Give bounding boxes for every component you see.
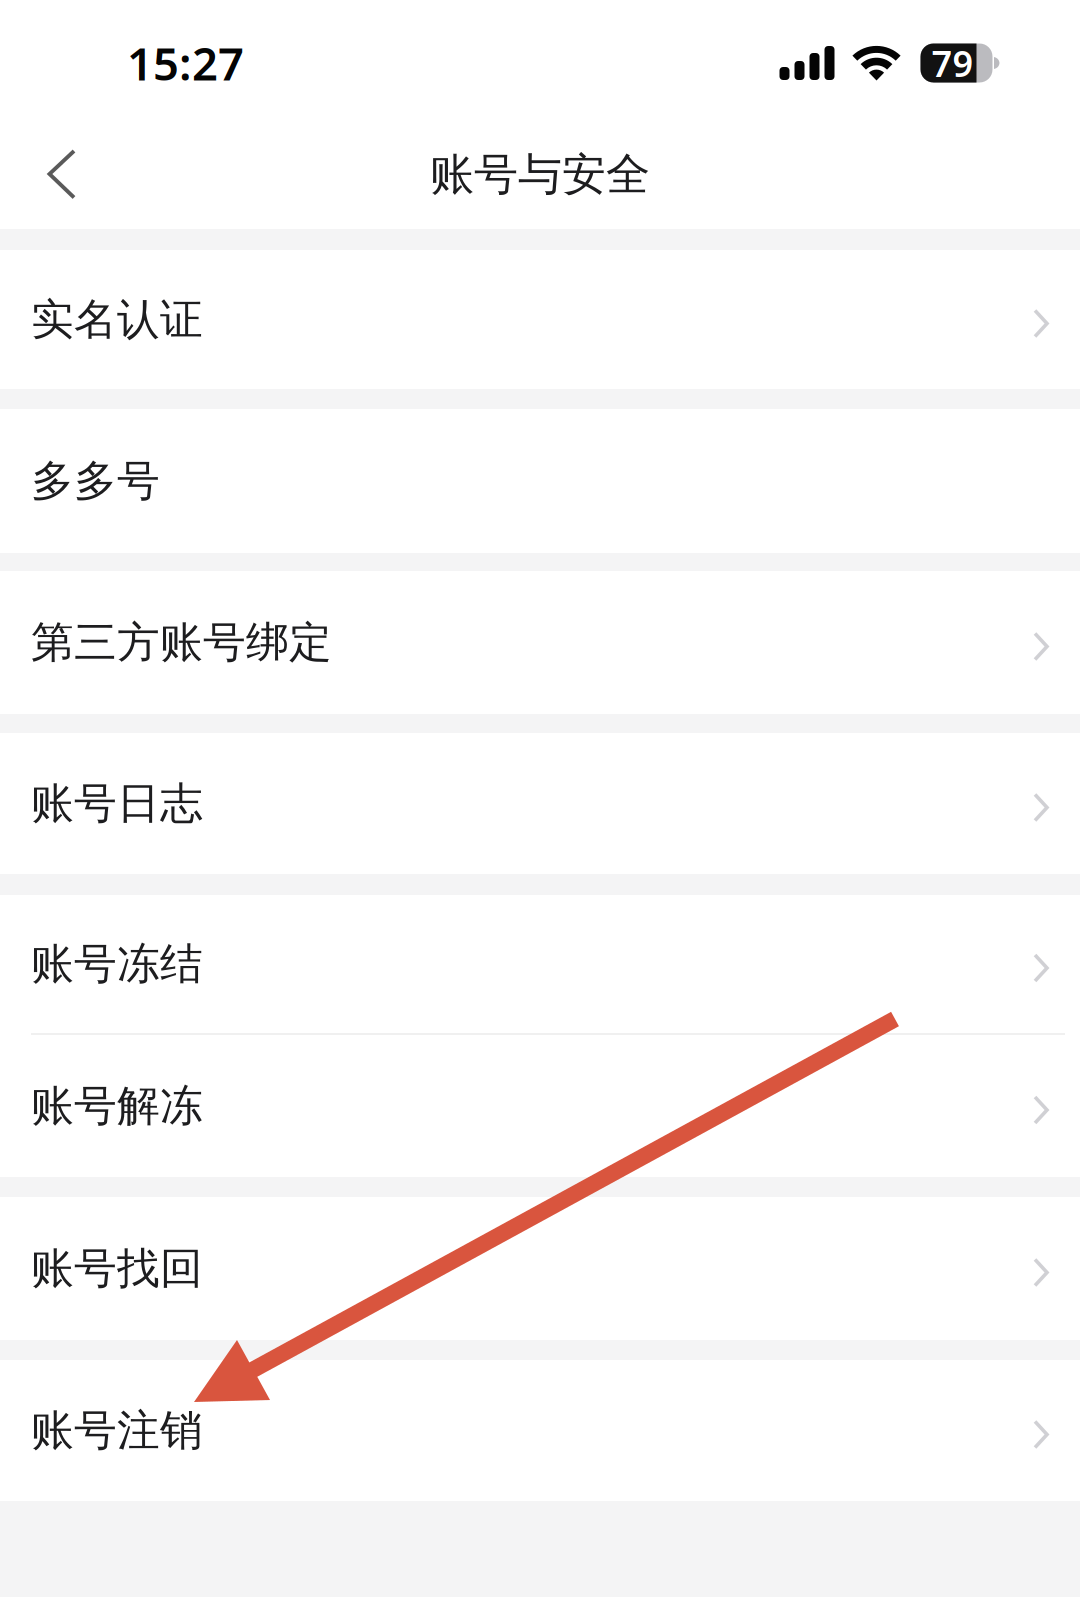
button[interactable]: 第三方账号绑定 bbox=[0, 571, 1080, 714]
button[interactable]: 账号解冻 bbox=[0, 1035, 1080, 1177]
staticText: 15:27 bbox=[127, 33, 244, 93]
button[interactable]: Back bbox=[0, 110, 120, 229]
staticText: 多多号 bbox=[31, 455, 160, 507]
button[interactable]: 账号日志 bbox=[0, 733, 1080, 874]
button[interactable]: 实名认证 bbox=[0, 250, 1080, 389]
button[interactable]: 多多号 bbox=[0, 409, 1080, 553]
staticText: 账号日志 bbox=[31, 777, 203, 830]
staticText: 第三方账号绑定 bbox=[31, 616, 332, 669]
button[interactable]: 账号注销 bbox=[0, 1360, 1080, 1501]
staticText: 实名认证 bbox=[31, 293, 203, 346]
staticText: 账号找回 bbox=[31, 1242, 203, 1295]
button[interactable]: 账号找回 bbox=[0, 1197, 1080, 1340]
staticText: 账号与安全 bbox=[430, 147, 650, 201]
button[interactable]: 账号冻结 bbox=[0, 895, 1080, 1033]
staticText: 79 bbox=[931, 39, 973, 87]
staticText: 账号冻结 bbox=[31, 938, 203, 990]
staticText: 账号注销 bbox=[31, 1404, 203, 1457]
staticText: 账号解冻 bbox=[31, 1080, 203, 1132]
